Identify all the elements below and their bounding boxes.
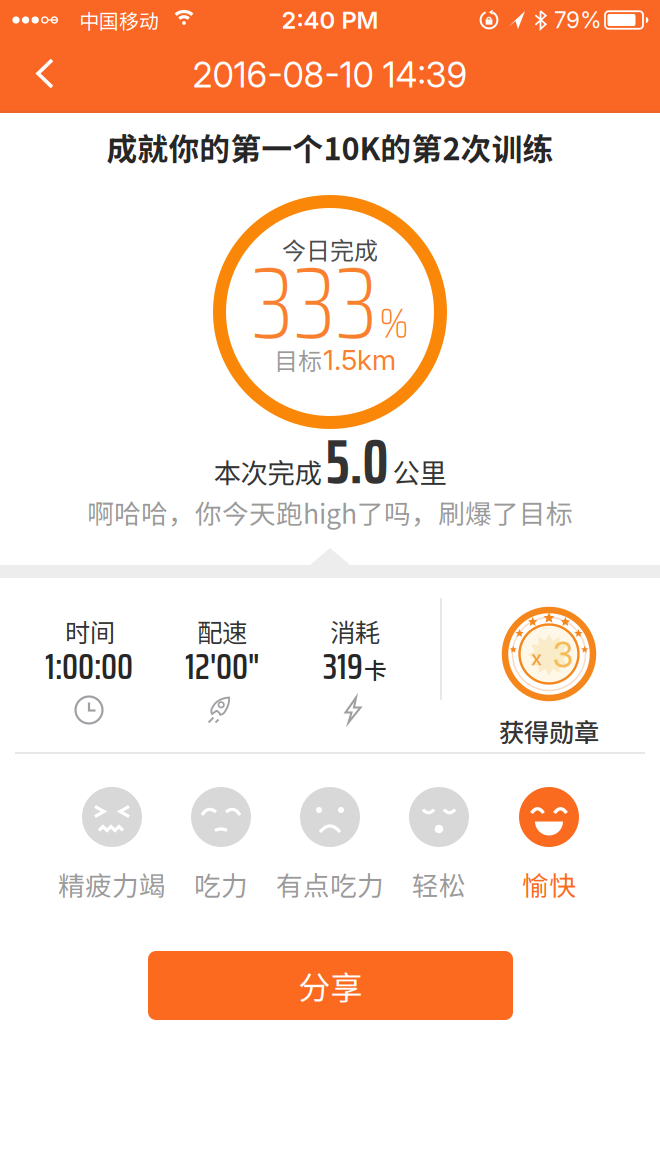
staticText: 轻松 [412,865,466,903]
staticText: 12'00" [185,637,259,695]
staticText: 分享 [298,962,362,1009]
button[interactable] [409,787,469,847]
staticText: 时间 [65,613,115,649]
staticText: 本次完成 [213,452,321,491]
staticText: 成就你的第一个10K的第2次训练 [106,125,553,169]
staticText: 啊哈哈，你今天跑high了吗，刷爆了目标 [87,493,573,531]
staticText: 目标 [274,342,322,377]
button[interactable]: 分享 [148,951,513,1020]
staticText: 配速 [197,613,247,649]
staticText: 消耗 [330,613,380,649]
staticText: 卡 [364,653,387,685]
button[interactable] [300,787,360,847]
staticText: 333 [251,224,377,382]
button[interactable] [191,787,251,847]
staticText: 319 [323,637,363,695]
staticText: 1:00:00 [45,637,133,695]
staticText: 愉快 [522,865,576,903]
staticText: 公里 [392,452,446,491]
staticText: 中国移动 [79,5,159,34]
staticText: 79% [554,6,602,34]
staticText: 有点吃力 [276,865,384,903]
staticText: 精疲力竭 [58,865,166,903]
staticText: 吃力 [194,865,248,903]
staticText: 3 [552,634,573,676]
staticText: 2016-08-10 14:39 [192,54,467,96]
staticText: 2:40 PM [281,5,378,34]
staticText: 今日完成 [282,232,378,266]
staticText: 获得勋章 [499,713,599,749]
staticText: 5.0 [325,414,388,510]
button[interactable] [519,787,579,847]
staticText: x [531,646,542,670]
button[interactable] [32,56,68,92]
staticText: 1.5km [323,343,396,377]
button[interactable] [82,787,142,847]
staticText: % [379,291,408,356]
